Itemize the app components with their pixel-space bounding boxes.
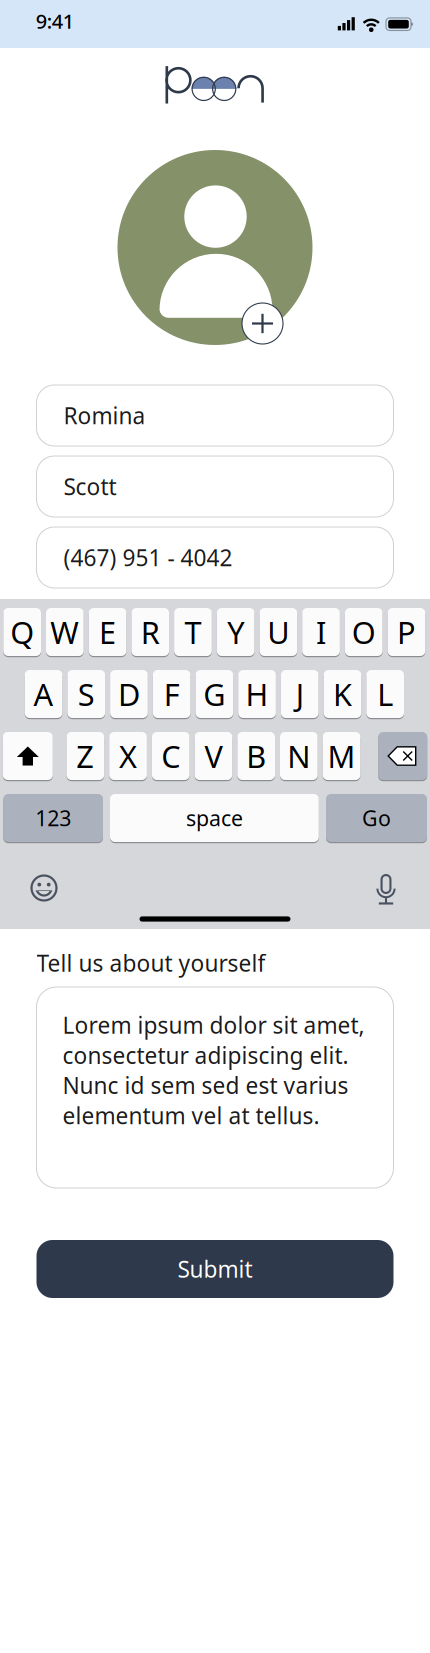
staticText: O: [352, 612, 376, 652]
button[interactable]: Submit: [36, 1240, 393, 1298]
button[interactable]: Add photo: [242, 303, 283, 344]
staticText: N: [287, 736, 310, 776]
staticText: Z: [76, 736, 94, 776]
button[interactable]: F: [153, 669, 190, 719]
button[interactable]: Romina: [36, 385, 393, 446]
button[interactable]: G: [195, 669, 233, 719]
button[interactable]: W: [46, 607, 84, 657]
button[interactable]: K: [324, 669, 361, 719]
staticText: U: [267, 612, 289, 652]
button[interactable]: Delete: [378, 731, 427, 781]
button[interactable]: H: [238, 669, 276, 719]
staticText: Romina: [63, 400, 145, 430]
button[interactable]: T: [174, 607, 212, 657]
staticText: A: [33, 674, 53, 714]
button[interactable]: Z: [66, 731, 104, 781]
button[interactable]: Q: [3, 607, 41, 657]
button[interactable]: O: [345, 607, 383, 657]
button[interactable]: Scott: [36, 456, 393, 517]
staticText: V: [204, 736, 222, 776]
staticText: J: [296, 674, 304, 714]
button[interactable]: N: [280, 731, 318, 781]
staticText: Tell us about yourself: [36, 948, 265, 978]
staticText: C: [161, 736, 180, 776]
button[interactable]: B: [237, 731, 275, 781]
staticText: Lorem ipsum dolor sit amet, consectetur …: [62, 1010, 364, 1130]
button[interactable]: (467) 951 - 4042: [36, 527, 393, 588]
button[interactable]: space: [110, 793, 319, 843]
button[interactable]: Y: [217, 607, 254, 657]
staticText: W: [50, 612, 79, 652]
staticText: B: [246, 736, 266, 776]
staticText: H: [246, 674, 269, 714]
button[interactable]: A: [25, 669, 62, 719]
button[interactable]: L: [366, 669, 404, 719]
staticText: M: [328, 736, 356, 776]
button[interactable]: P: [388, 607, 425, 657]
button[interactable]: X: [109, 731, 147, 781]
staticText: 123: [35, 804, 71, 832]
button[interactable]: Emoji keyboard: [29, 873, 59, 903]
button[interactable]: S: [67, 669, 105, 719]
button[interactable]: V: [195, 731, 232, 781]
staticText: 9:41: [36, 8, 74, 34]
staticText: Q: [10, 612, 34, 652]
button[interactable]: R: [131, 607, 169, 657]
staticText: L: [377, 674, 393, 714]
staticText: space: [186, 804, 243, 832]
staticText: Go: [362, 804, 391, 832]
staticText: (467) 951 - 4042: [63, 542, 232, 572]
button[interactable]: D: [110, 669, 148, 719]
staticText: K: [333, 674, 352, 714]
staticText: T: [184, 612, 201, 652]
button[interactable]: Shift: [3, 731, 53, 781]
staticText: X: [119, 736, 137, 776]
staticText: S: [78, 674, 95, 714]
button[interactable]: Dictate: [375, 873, 397, 905]
button[interactable]: U: [259, 607, 297, 657]
staticText: Submit: [177, 1254, 252, 1284]
staticText: P: [397, 612, 416, 652]
button[interactable]: J: [281, 669, 319, 719]
staticText: D: [118, 674, 140, 714]
button[interactable]: I: [302, 607, 340, 657]
staticText: I: [316, 612, 326, 652]
staticText: R: [141, 612, 160, 652]
staticText: Scott: [63, 471, 116, 501]
button[interactable]: M: [323, 731, 360, 781]
staticText: E: [99, 612, 116, 652]
button[interactable]: 123: [3, 793, 103, 843]
button[interactable]: Go: [326, 793, 427, 843]
button[interactable]: E: [89, 607, 126, 657]
staticText: F: [164, 674, 180, 714]
staticText: Y: [227, 612, 244, 652]
button[interactable]: C: [152, 731, 190, 781]
staticText: G: [203, 674, 225, 714]
